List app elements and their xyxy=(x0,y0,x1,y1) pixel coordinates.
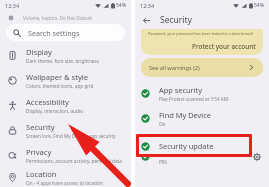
staticText: Play Protect scanned at 7:54 AM. xyxy=(159,96,230,102)
button[interactable]: Screen lock xyxy=(135,144,269,169)
staticText: Find My Device xyxy=(159,110,211,120)
staticText: Accessibility xyxy=(26,97,69,107)
staticText: See all warnings (2) xyxy=(149,64,200,72)
staticText: 54% xyxy=(254,2,264,9)
staticText: Password, your password has been leaked … xyxy=(148,31,256,36)
staticText: Display, interaction, audio xyxy=(26,108,84,114)
button[interactable]: Back xyxy=(140,14,152,26)
button[interactable]: See all warnings (2) xyxy=(141,58,263,77)
button[interactable]: Screen lock settings xyxy=(251,151,263,163)
staticText: Screen lock, Find My Device, app securit… xyxy=(26,133,116,139)
staticText: 12:34 xyxy=(5,2,20,9)
staticText: Display xyxy=(26,47,52,57)
staticText: On xyxy=(159,121,166,127)
staticText: 12:34 xyxy=(140,2,155,9)
button[interactable]: Wallpaper & style xyxy=(0,68,131,93)
staticText: Screen lock xyxy=(159,148,199,158)
button[interactable]: Find My Device xyxy=(135,106,269,131)
button[interactable]: Security xyxy=(0,118,131,143)
staticText: Security xyxy=(26,122,55,132)
button[interactable]: Search settings xyxy=(6,24,125,41)
staticText: 54% xyxy=(116,2,126,9)
button[interactable]: Privacy xyxy=(0,143,131,168)
staticText: Dark theme, font size, brightness xyxy=(26,58,100,64)
staticText: Security update xyxy=(159,141,214,151)
button[interactable]: Location xyxy=(0,168,131,187)
staticText: App security xyxy=(159,85,202,95)
staticText: Colors, themed icons, app grid xyxy=(26,83,94,89)
staticText: Security xyxy=(160,14,192,26)
button[interactable]: Password, your password has been leaked … xyxy=(141,29,263,55)
staticText: PIN xyxy=(159,159,167,165)
button[interactable]: Display xyxy=(0,43,131,68)
staticText: Location xyxy=(26,169,57,179)
staticText: Protect your account xyxy=(192,42,256,51)
staticText: On - 4 apps have access to location xyxy=(26,180,103,186)
staticText: Volume, haptics, Do Not Disturb xyxy=(23,15,93,21)
staticText: Search settings xyxy=(28,28,80,38)
staticText: Permissions, account activity, personal … xyxy=(26,158,122,164)
button[interactable]: App security xyxy=(135,81,269,106)
staticText: Privacy xyxy=(26,147,52,157)
button[interactable]: Accessibility xyxy=(0,93,131,118)
button[interactable]: Security update xyxy=(136,134,252,157)
staticText: Wallpaper & style xyxy=(26,72,89,82)
